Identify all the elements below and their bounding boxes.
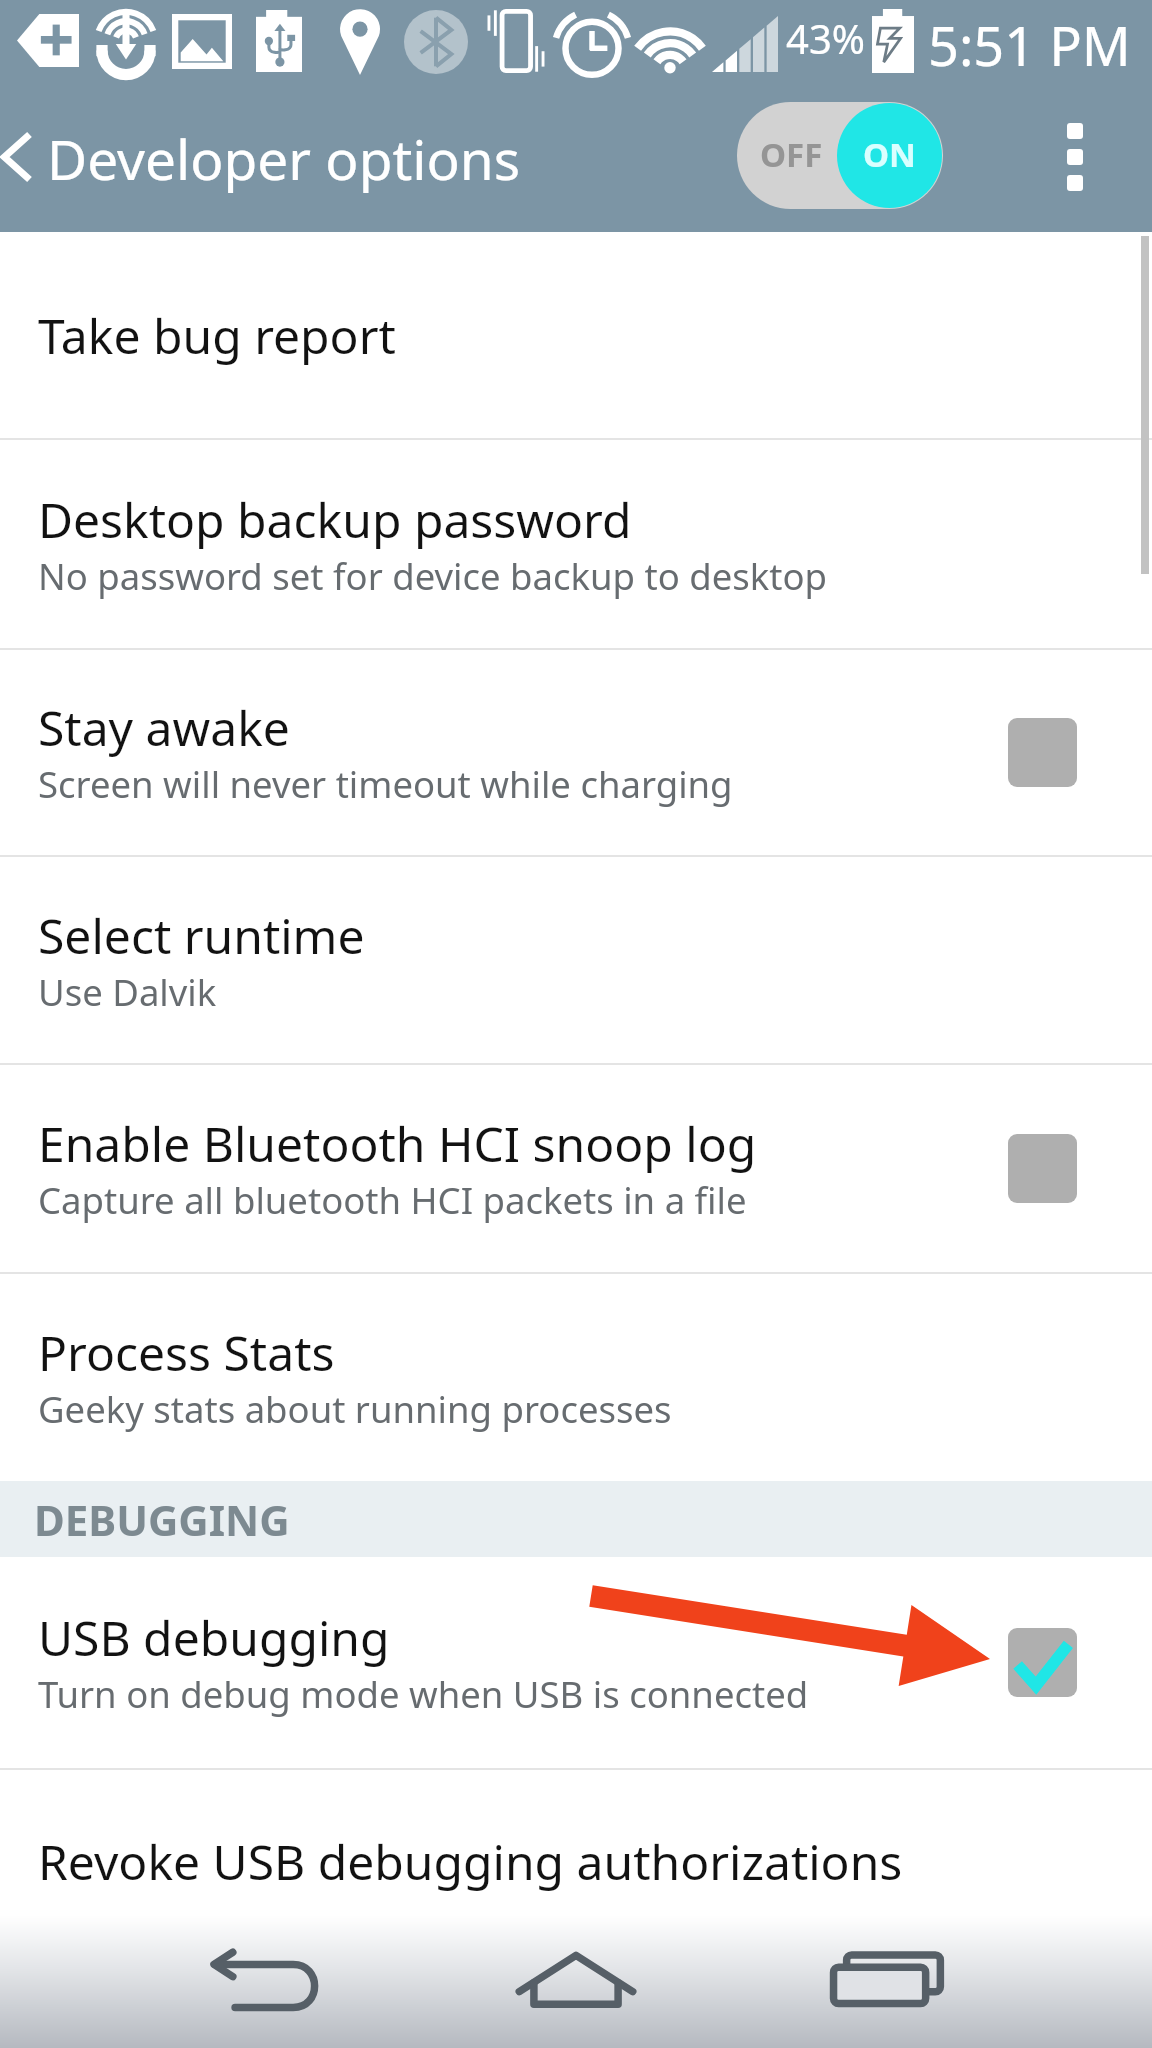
- staticText: Select runtime: [38, 903, 365, 968]
- staticText: Enable Bluetooth HCI snoop log: [38, 1111, 757, 1176]
- staticText: DEBUGGING: [34, 1491, 290, 1548]
- button[interactable]: Recent apps: [808, 1915, 968, 2048]
- staticText: Screen will never timeout while charging: [38, 759, 733, 809]
- staticText: Process Stats: [38, 1320, 335, 1385]
- staticText: Stay awake: [38, 695, 290, 760]
- button[interactable]: Select runtime: [0, 857, 1152, 1063]
- staticText: OFF: [760, 132, 823, 177]
- button[interactable]: Take bug report: [0, 232, 1152, 438]
- staticText: Use Dalvik: [38, 967, 217, 1017]
- button[interactable]: Developer options: [0, 90, 700, 232]
- staticText: ON: [863, 132, 916, 177]
- button[interactable]: Enable Bluetooth HCI snoop log: [0, 1065, 1152, 1272]
- button[interactable]: Revoke USB debugging authorizations: [0, 1770, 1152, 1915]
- staticText: Capture all bluetooth HCI packets in a f…: [38, 1175, 747, 1225]
- button[interactable]: USB debugging: [0, 1557, 1152, 1768]
- staticText: Developer options: [47, 121, 521, 196]
- staticText: USB debugging: [38, 1605, 390, 1670]
- staticText: Desktop backup password: [38, 487, 632, 552]
- button[interactable]: More options: [1030, 90, 1120, 232]
- button[interactable]: Checkbox: [1008, 1134, 1077, 1203]
- staticText: No password set for device backup to des…: [38, 551, 827, 601]
- staticText: Take bug report: [38, 303, 396, 368]
- staticText: 43%: [786, 11, 865, 65]
- staticText: Revoke USB debugging authorizations: [38, 1829, 903, 1894]
- button[interactable]: Checkbox: [1008, 1628, 1077, 1697]
- button[interactable]: Desktop backup password: [0, 440, 1152, 648]
- staticText: 5:51 PM: [928, 8, 1131, 82]
- button[interactable]: Home: [496, 1915, 656, 2048]
- button[interactable]: Back: [185, 1915, 345, 2048]
- button[interactable]: Checkbox: [1008, 718, 1077, 787]
- button[interactable]: Process Stats: [0, 1274, 1152, 1481]
- button[interactable]: Stay awake: [0, 650, 1152, 855]
- staticText: Turn on debug mode when USB is connected: [38, 1669, 809, 1719]
- button[interactable]: Toggle developer options: [737, 102, 943, 209]
- staticText: Geeky stats about running processes: [38, 1384, 672, 1434]
